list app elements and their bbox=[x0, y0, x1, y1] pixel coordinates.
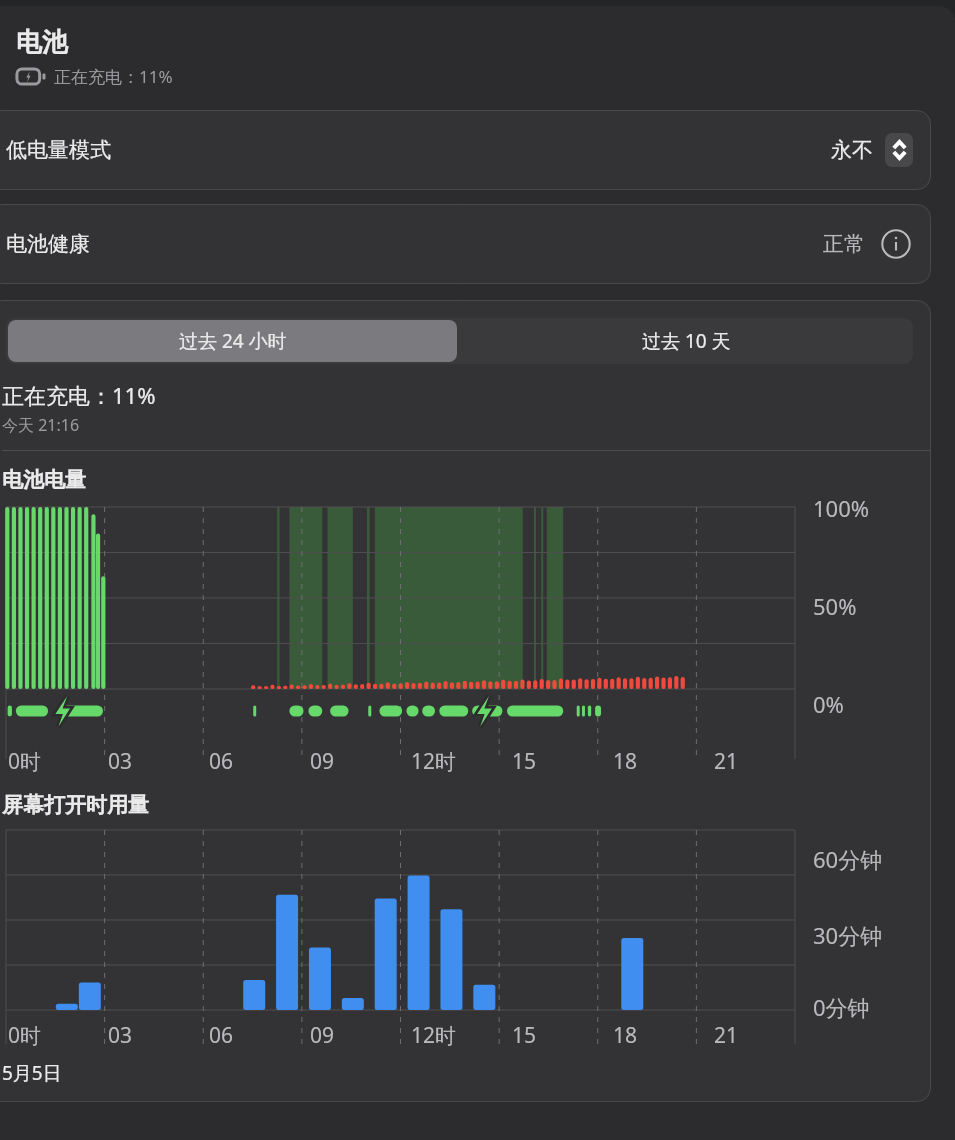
staticText: 60分钟 bbox=[813, 844, 883, 874]
staticText: 50% bbox=[813, 591, 857, 621]
staticText: 03 bbox=[108, 747, 133, 776]
staticText: 12时 bbox=[411, 747, 457, 776]
staticText: 06 bbox=[209, 747, 234, 776]
staticText: 5月5日 bbox=[2, 1060, 62, 1086]
button[interactable]: 选择低电量模式 bbox=[885, 133, 913, 167]
staticText: 09 bbox=[310, 1021, 335, 1050]
staticText: 15 bbox=[512, 1021, 537, 1050]
staticText: 正在充电：11% bbox=[2, 380, 156, 410]
staticText: 0时 bbox=[8, 747, 42, 776]
staticText: 正在充电：11% bbox=[54, 65, 173, 88]
staticText: 电池 bbox=[16, 26, 68, 59]
button[interactable]: 过去 24 小时 bbox=[8, 320, 457, 362]
staticText: 0% bbox=[813, 689, 844, 719]
staticText: 15 bbox=[512, 747, 537, 776]
button[interactable]: 过去 10 天 bbox=[459, 318, 913, 364]
staticText: 03 bbox=[108, 1021, 133, 1050]
staticText: 18 bbox=[613, 1021, 638, 1050]
staticText: 21 bbox=[714, 1021, 739, 1050]
staticText: 低电量模式 bbox=[6, 137, 111, 163]
staticText: 永不 bbox=[831, 137, 873, 163]
staticText: 今天 21:16 bbox=[2, 414, 80, 436]
staticText: 12时 bbox=[411, 1021, 457, 1050]
staticText: 电池电量 bbox=[2, 467, 86, 493]
staticText: 过去 24 小时 bbox=[179, 328, 287, 354]
button[interactable]: 电池健康信息 bbox=[879, 227, 913, 261]
staticText: 18 bbox=[613, 747, 638, 776]
staticText: 过去 10 天 bbox=[642, 328, 731, 354]
staticText: 0分钟 bbox=[813, 992, 870, 1022]
staticText: 100% bbox=[813, 493, 870, 523]
staticText: 电池健康 bbox=[6, 231, 90, 257]
staticText: 06 bbox=[209, 1021, 234, 1050]
staticText: 正常 bbox=[823, 231, 865, 257]
staticText: 0时 bbox=[8, 1021, 42, 1050]
staticText: 屏幕打开时用量 bbox=[2, 792, 149, 818]
staticText: 21 bbox=[714, 747, 739, 776]
staticText: 09 bbox=[310, 747, 335, 776]
staticText: 30分钟 bbox=[813, 920, 883, 950]
